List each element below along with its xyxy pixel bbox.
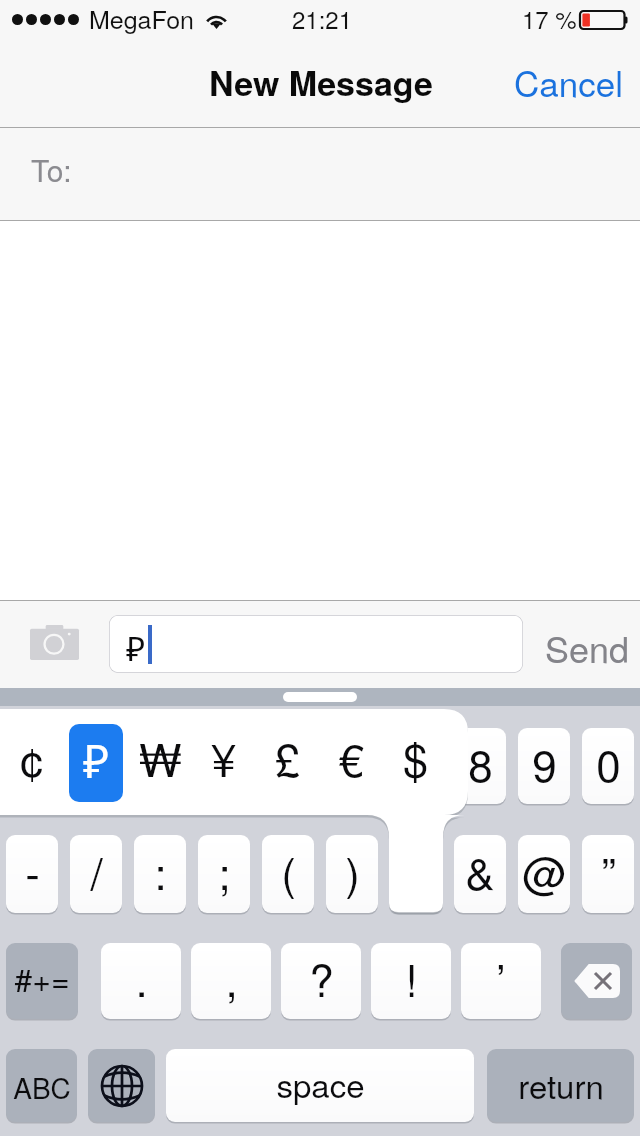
button[interactable]: 4	[198, 728, 250, 804]
staticText: 0	[596, 731, 621, 794]
staticText: space	[276, 1060, 365, 1107]
button[interactable]: Take photo	[30, 625, 79, 660]
staticText: 6	[340, 731, 365, 794]
button[interactable]: ¥	[198, 718, 250, 796]
button[interactable]: return	[487, 1049, 634, 1122]
staticText: 17 %	[522, 1, 577, 35]
staticText: $	[403, 725, 429, 789]
staticText: -	[25, 839, 40, 902]
staticText: (	[281, 839, 296, 902]
staticText: ¢	[19, 725, 45, 789]
button[interactable]: ”	[582, 835, 634, 913]
staticText: )	[345, 839, 360, 902]
button[interactable]: /	[70, 835, 122, 913]
staticText: ”	[601, 839, 616, 902]
button[interactable]: !	[371, 943, 451, 1019]
staticText: ;	[218, 839, 231, 902]
staticText: 2	[84, 731, 109, 794]
button[interactable]: 8	[454, 728, 506, 804]
staticText: Cancel	[514, 57, 623, 107]
staticText: €	[339, 725, 365, 789]
staticText: return	[518, 1061, 604, 1108]
button[interactable]: 3	[134, 728, 186, 804]
staticText: ABC	[13, 1067, 71, 1107]
staticText: 4	[212, 731, 237, 794]
staticText: £	[275, 725, 301, 789]
button[interactable]: ?	[281, 943, 361, 1019]
staticText: /	[90, 839, 103, 902]
button[interactable]: €	[326, 718, 378, 796]
button[interactable]: @	[518, 835, 570, 913]
staticText: ¥	[211, 725, 237, 789]
button[interactable]: $	[390, 718, 442, 796]
button[interactable]: Cancel	[490, 45, 640, 123]
staticText: To:	[31, 148, 72, 191]
staticText: 21:21	[292, 1, 353, 35]
staticText: ₽	[126, 626, 146, 671]
button[interactable]: ;	[198, 835, 250, 913]
staticText: #+=	[14, 955, 70, 1001]
staticText: .	[135, 946, 148, 1009]
button[interactable]: ₽	[69, 724, 123, 802]
staticText: ?	[309, 946, 334, 1009]
button[interactable]: 0	[582, 728, 634, 804]
staticText: ₩	[139, 725, 182, 789]
staticText: MegaFon	[89, 0, 194, 36]
button[interactable]: &	[454, 835, 506, 913]
button[interactable]: 6	[326, 728, 378, 804]
button[interactable]: Send	[545, 622, 630, 674]
staticText: 7	[404, 731, 429, 794]
button[interactable]: )	[326, 835, 378, 913]
staticText: ’	[496, 946, 506, 1009]
staticText: 8	[468, 731, 493, 794]
staticText: ₽	[83, 730, 110, 791]
button[interactable]: Delete	[561, 943, 632, 1019]
button[interactable]: -	[6, 835, 58, 913]
staticText: !	[405, 946, 418, 1009]
button[interactable]: £	[262, 718, 314, 796]
staticText: New Message	[209, 58, 433, 107]
button[interactable]: .	[101, 943, 181, 1019]
staticText: 9	[532, 731, 557, 794]
button[interactable]: 7	[390, 728, 442, 804]
staticText: 5	[276, 731, 301, 794]
staticText: :	[154, 839, 167, 902]
button[interactable]: ₽	[109, 615, 523, 673]
button[interactable]: (	[262, 835, 314, 913]
button[interactable]: 9	[518, 728, 570, 804]
button[interactable]: space	[166, 1049, 474, 1122]
button[interactable]: ₽	[390, 835, 442, 913]
staticText: &	[465, 839, 495, 902]
button[interactable]: 1	[6, 728, 58, 804]
button[interactable]: Switch keyboard language	[88, 1049, 155, 1122]
staticText: @	[522, 839, 567, 902]
button[interactable]: ,	[191, 943, 271, 1019]
staticText: ,	[225, 946, 238, 1009]
button[interactable]: To:	[0, 128, 640, 221]
button[interactable]: ABC	[6, 1049, 77, 1122]
staticText: 1	[20, 731, 45, 794]
button[interactable]: 2	[70, 728, 122, 804]
button[interactable]: :	[134, 835, 186, 913]
button[interactable]: ¢	[6, 718, 58, 796]
button[interactable]: ’	[461, 943, 541, 1019]
button[interactable]: ₩	[134, 718, 186, 796]
staticText: 3	[148, 731, 173, 794]
button[interactable]: 5	[262, 728, 314, 804]
button[interactable]: #+=	[6, 943, 78, 1019]
